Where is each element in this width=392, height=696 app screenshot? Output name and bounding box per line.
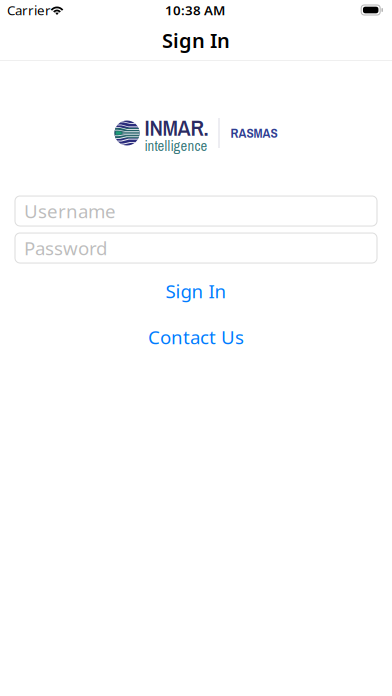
staticText: INMAR. [144,112,208,143]
staticText: Username [24,199,116,223]
staticText: 10:38 AM [165,1,225,19]
button[interactable]: Sign In [0,276,392,306]
staticText: RASMAS [230,124,277,142]
button[interactable]: Contact Us [0,322,392,352]
staticText: Password [24,236,107,260]
staticText: intelligence [144,136,207,156]
staticText: Contact Us [148,325,244,349]
staticText: Carrier [7,1,51,19]
staticText: Sign In [162,27,230,53]
staticText: Sign In [165,279,226,303]
